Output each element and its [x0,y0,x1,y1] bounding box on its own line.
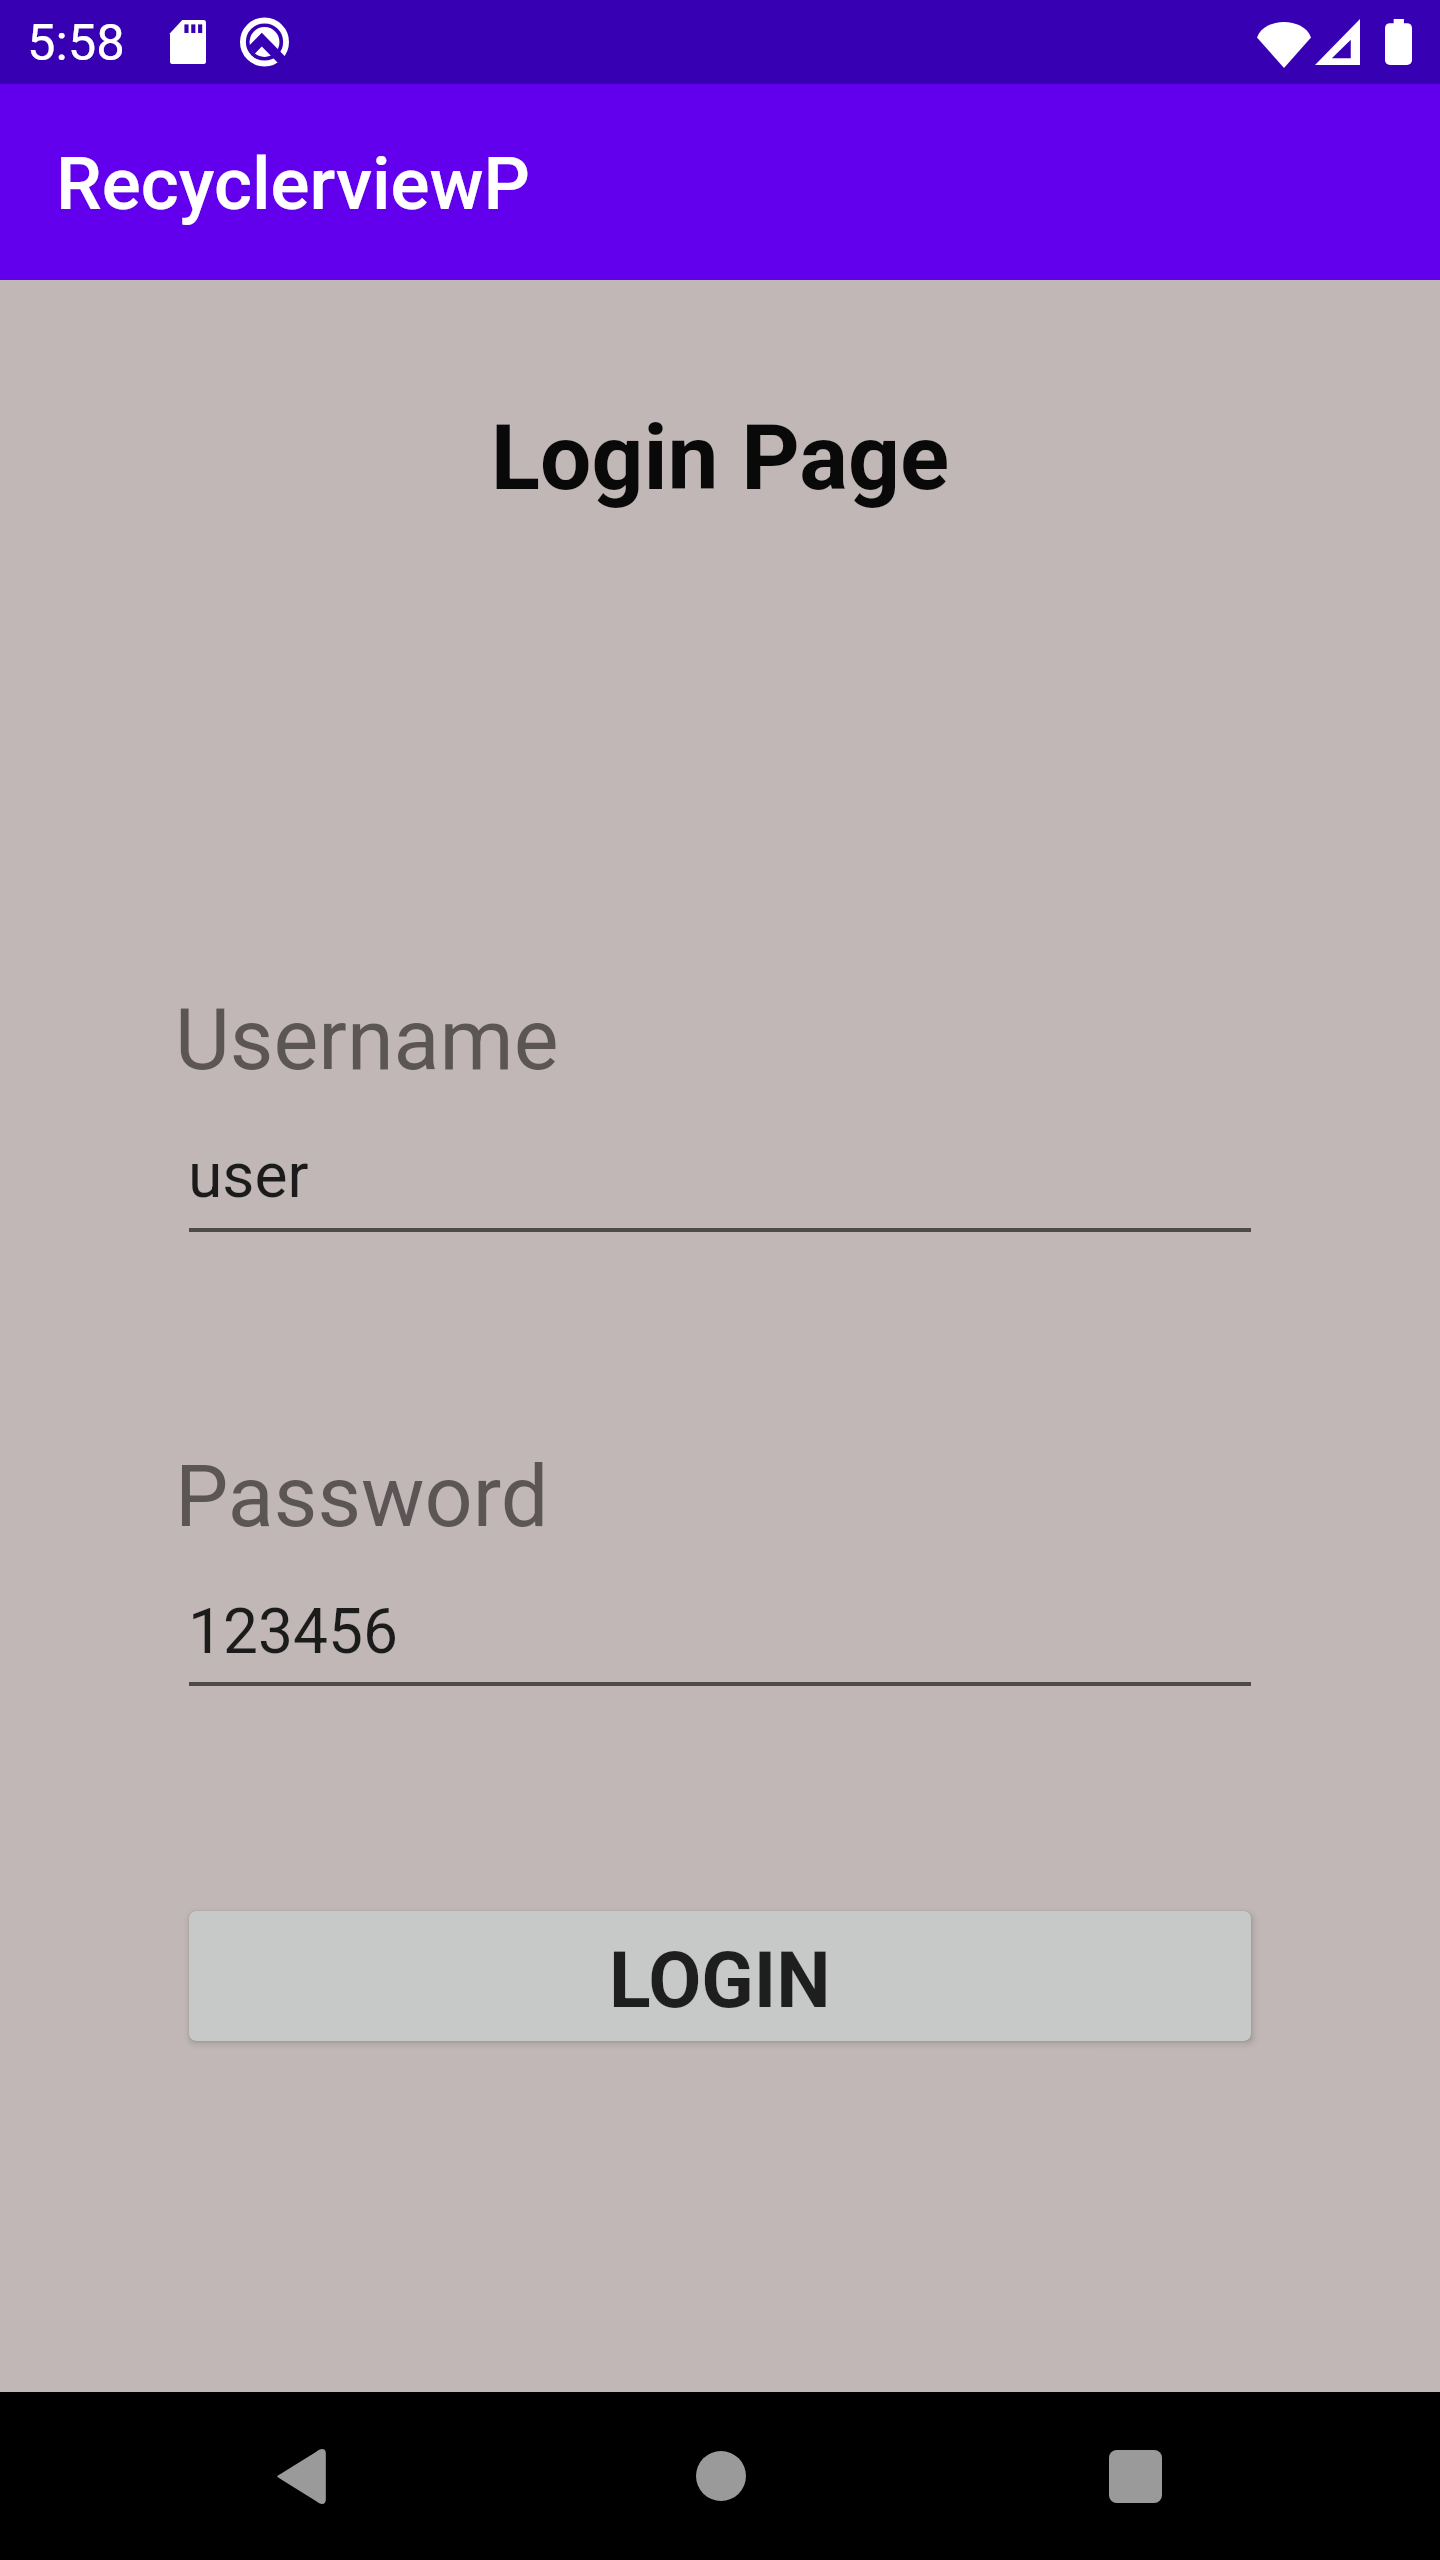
button[interactable]: RecyclerviewP [0,84,1440,280]
button[interactable]: Back [239,2392,365,2560]
staticText: user [188,1139,309,1212]
button[interactable]: 123456 [189,1574,1251,1686]
staticText: 123456 [188,1595,399,1668]
button[interactable]: user [189,1118,1251,1232]
button[interactable]: Home [658,2392,784,2560]
staticText: RecyclerviewP [56,141,531,226]
button[interactable]: Recent apps [1072,2392,1198,2560]
staticText: LOGIN [609,1936,831,2026]
staticText: Login Page [0,405,1440,512]
staticText: Username [175,991,559,1090]
button[interactable]: LOGIN [189,1911,1251,2041]
staticText: Password [175,1448,549,1547]
staticText: 5:58 [27,13,125,72]
